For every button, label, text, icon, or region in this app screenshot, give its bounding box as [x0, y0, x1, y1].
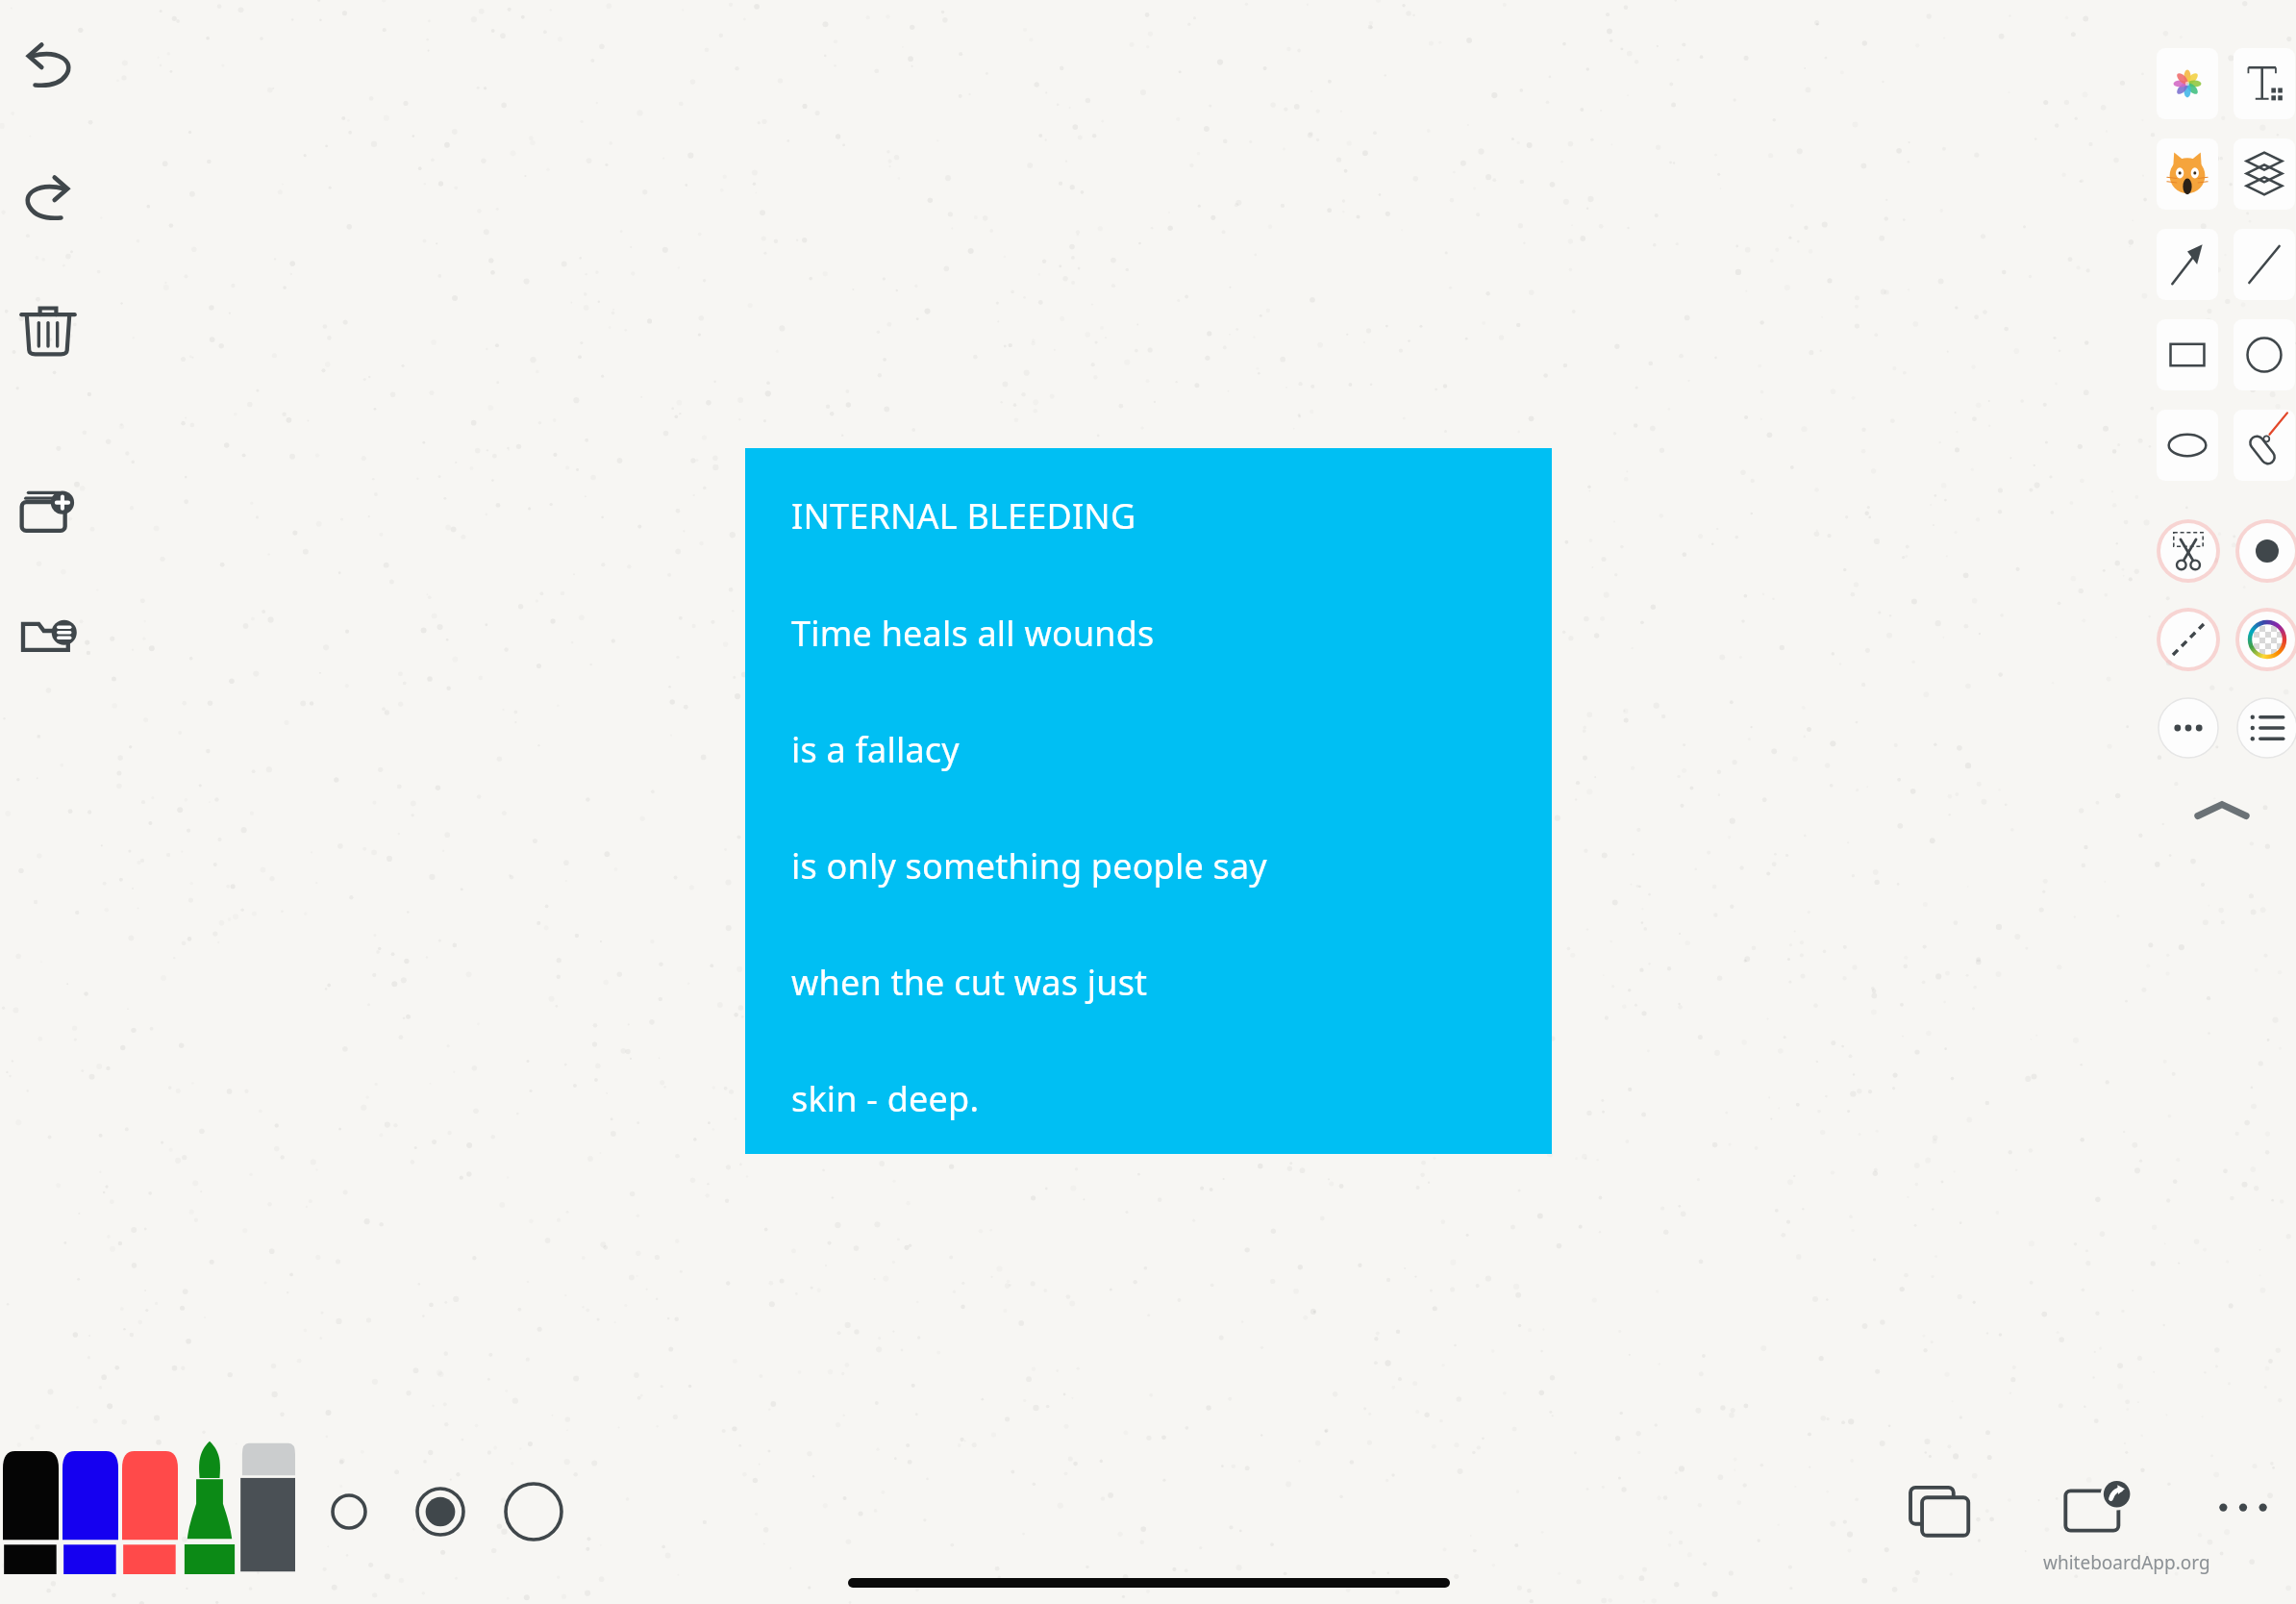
button[interactable]: Collapse toolbar — [2179, 789, 2265, 833]
button[interactable]: Marker colour — [3, 1451, 59, 1574]
button[interactable]: Redo — [8, 160, 88, 240]
button[interactable]: Highlighter — [182, 1439, 237, 1574]
button[interactable]: Insert text — [2234, 48, 2295, 119]
staticText: is only something people say — [791, 842, 1267, 890]
button[interactable]: Ellipse tool — [2157, 410, 2218, 481]
button[interactable]: Eraser — [239, 1441, 295, 1574]
button[interactable]: Stroke size — [402, 1473, 479, 1550]
staticText: Time heals all wounds — [791, 610, 1155, 657]
button[interactable]: Stroke size — [311, 1473, 387, 1550]
button[interactable]: Circle tool — [2234, 319, 2295, 390]
button[interactable]: Pages list — [6, 596, 92, 683]
staticText: INTERNAL BLEEDING — [791, 492, 1136, 539]
button[interactable]: Insert photo — [2157, 48, 2218, 119]
button[interactable]: Layers — [2234, 138, 2295, 210]
staticText: when the cut was just — [791, 959, 1148, 1006]
button[interactable]: INTERNAL BLEEDING — [745, 448, 1552, 1154]
staticText: skin - deep. — [791, 1075, 980, 1122]
button[interactable]: Dashed stroke — [2157, 608, 2220, 671]
button[interactable]: Marker colour — [62, 1451, 118, 1574]
button[interactable]: Undo — [8, 27, 88, 108]
button[interactable]: Rectangle tool — [2157, 319, 2218, 390]
button[interactable]: More options — [2202, 1469, 2284, 1552]
button[interactable]: More tools — [2157, 696, 2220, 760]
button[interactable]: Fill colour — [2235, 608, 2296, 671]
button[interactable]: Delete — [8, 290, 88, 371]
button[interactable]: Stroke colour — [2235, 519, 2296, 583]
button[interactable]: Cut selection — [2157, 519, 2220, 583]
button[interactable]: Pen tool — [2234, 410, 2295, 481]
button[interactable]: Stickers — [2157, 138, 2218, 210]
button[interactable]: Share — [2056, 1469, 2138, 1552]
button[interactable]: Arrow tool — [2157, 229, 2218, 300]
button[interactable]: Line tool — [2234, 229, 2295, 300]
staticText: whiteboardApp.org — [2043, 1550, 2210, 1575]
button[interactable]: New page — [6, 469, 92, 556]
button[interactable]: Duplicate page — [1899, 1469, 1982, 1552]
button[interactable]: Tool list — [2235, 696, 2296, 760]
button[interactable]: Stroke size — [495, 1473, 572, 1550]
staticText: is a fallacy — [791, 726, 960, 773]
button[interactable]: Marker colour — [122, 1451, 178, 1574]
